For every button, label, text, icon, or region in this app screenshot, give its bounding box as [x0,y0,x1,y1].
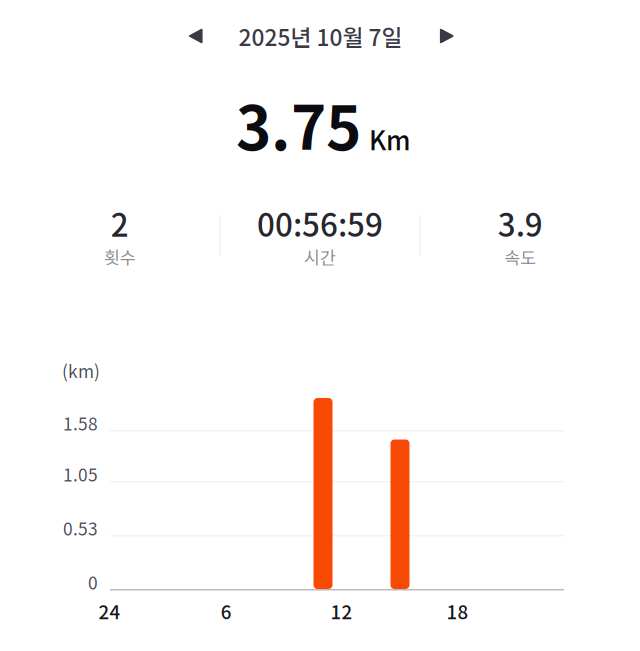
staticText: (km) [62,358,100,383]
staticText: 00:56:59 [257,200,383,246]
staticText: Km [369,120,411,158]
staticText: 12 [330,597,352,624]
staticText: 3.9 [498,200,543,246]
button[interactable]: Next day [414,12,476,60]
staticText: 횟수 [104,244,136,270]
staticText: 1.05 [63,461,98,487]
staticText: 24 [98,597,120,624]
staticText: 3.75 [236,81,361,167]
staticText: 1.58 [63,410,98,436]
staticText: 2 [111,200,129,246]
staticText: 0 [88,569,98,595]
staticText: 6 [221,597,232,624]
staticText: 0.53 [63,515,98,541]
button[interactable]: Previous day [164,12,226,60]
staticText: 시간 [304,244,336,270]
staticText: 18 [446,597,468,624]
staticText: 속도 [504,244,536,270]
staticText: 2025년 10월 7일 [238,20,402,52]
